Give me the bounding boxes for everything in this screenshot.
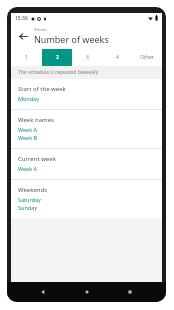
staticText: Weekends [18,186,48,194]
staticText: The schedule is repeated biweekly [18,69,99,76]
staticText: Monday [18,95,39,102]
button[interactable]: Home [79,284,95,300]
staticText: School [34,27,47,32]
button[interactable]: Other [132,49,162,66]
staticText: Week B [18,134,38,141]
button[interactable]: Recent apps [122,284,138,300]
staticText: Current week [18,155,56,163]
button[interactable]: Current week [11,149,162,179]
staticText: 15:36 [15,15,28,22]
button[interactable]: 1 [11,49,42,66]
staticText: 1 [25,54,28,61]
staticText: Sunday [18,204,38,211]
button[interactable]: Back [35,284,51,300]
staticText: 4 [116,54,119,61]
staticText: Start of the week [18,85,66,93]
staticText: Saturday [18,196,41,203]
button[interactable]: Weekends [11,180,162,218]
staticText: Week A [18,165,38,172]
button[interactable]: Week names [11,110,162,148]
staticText: 2 [56,54,59,61]
button[interactable]: Start of the week [11,79,162,109]
button[interactable]: 4 [102,49,132,66]
staticText: Week A [18,126,38,133]
staticText: Number of weeks [34,33,109,45]
staticText: Other [140,54,154,61]
button[interactable]: Back [14,27,32,45]
button[interactable]: 3 [72,49,102,66]
staticText: Week names [18,116,54,124]
button[interactable]: 2 [42,49,72,66]
staticText: 3 [86,54,89,61]
